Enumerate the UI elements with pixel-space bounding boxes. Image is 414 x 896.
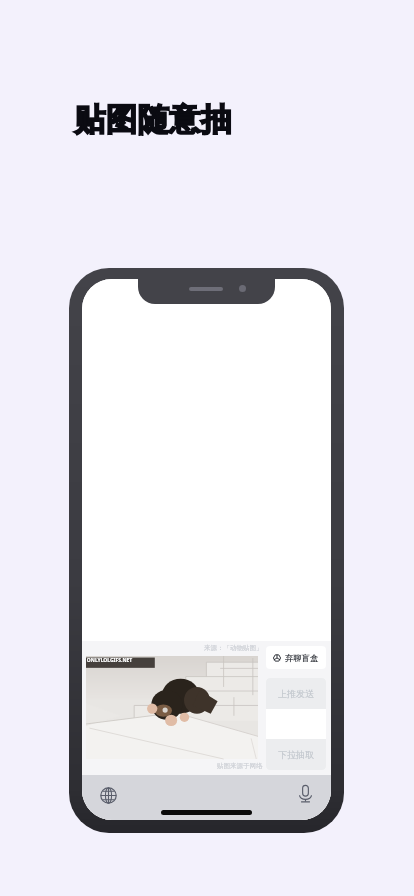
staticText: 贴图来源于网络 [217,762,263,770]
button[interactable]: Language [97,784,119,806]
staticText: 弃聊盲盒 [285,653,319,663]
button[interactable]: Voice input [294,783,316,805]
button[interactable]: 弃聊盲盒 [266,646,326,669]
button[interactable]: 上推发送 [266,678,326,709]
staticText: 下拉抽取 [278,749,314,760]
button[interactable]: 下拉抽取 [266,739,326,770]
staticText: 上推发送 [278,688,314,699]
staticText: 来源：「动物贴图」 [204,644,263,652]
